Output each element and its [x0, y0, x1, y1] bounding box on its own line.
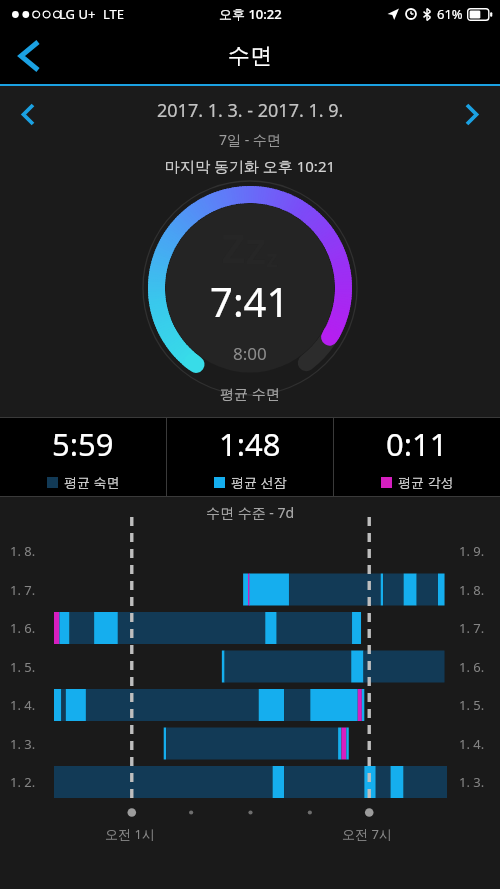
- staticText: 마지막 동기화 오후 10:21: [165, 156, 336, 174]
- staticText: 수면: [228, 42, 272, 70]
- staticText: 1:48: [219, 423, 281, 465]
- staticText: 1. 3.: [10, 735, 36, 753]
- staticText: 평균 선잠: [231, 473, 287, 491]
- staticText: 1. 7.: [10, 581, 36, 599]
- staticText: 61%: [437, 5, 463, 23]
- staticText: 1. 4.: [10, 696, 36, 714]
- staticText: 2017. 1. 3. - 2017. 1. 9.: [157, 98, 344, 123]
- staticText: 수면 수준 - 7d: [206, 503, 295, 522]
- staticText: 1. 7.: [459, 619, 485, 637]
- staticText: 1. 6.: [10, 619, 36, 637]
- button[interactable]: Back: [0, 28, 58, 84]
- staticText: 5:59: [52, 423, 114, 465]
- button[interactable]: 1:48: [167, 418, 333, 496]
- button[interactable]: Next week: [444, 86, 500, 142]
- staticText: 1. 9.: [459, 542, 485, 560]
- button[interactable]: Previous week: [0, 86, 56, 142]
- staticText: 1. 2.: [10, 773, 36, 791]
- staticText: 평균 숙면: [64, 473, 120, 491]
- staticText: 1. 4.: [459, 735, 485, 753]
- staticText: 7:41: [210, 274, 290, 328]
- staticText: 1. 3.: [459, 773, 485, 791]
- button[interactable]: 0:11: [334, 418, 500, 496]
- staticText: 평균 수면: [220, 384, 280, 403]
- staticText: 오전 7시: [342, 825, 392, 843]
- staticText: 1. 5.: [459, 696, 485, 714]
- staticText: LTE: [103, 5, 125, 23]
- staticText: 1. 5.: [10, 658, 36, 676]
- staticText: 오전 1시: [105, 825, 155, 843]
- button[interactable]: 5:59: [0, 418, 166, 496]
- staticText: 1. 8.: [459, 581, 485, 599]
- staticText: 평균 각성: [398, 473, 454, 491]
- staticText: 7일 - 수면: [219, 130, 281, 149]
- staticText: 1. 6.: [459, 658, 485, 676]
- staticText: LG U+: [59, 5, 96, 23]
- staticText: 오후 10:22: [219, 5, 282, 23]
- staticText: 8:00: [233, 342, 267, 365]
- staticText: 0:11: [386, 423, 448, 465]
- staticText: 1. 8.: [10, 542, 36, 560]
